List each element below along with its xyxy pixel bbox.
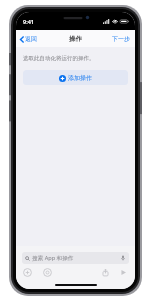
button[interactable]: Variables [43, 268, 52, 277]
button[interactable]: 返回 [16, 32, 42, 46]
staticText: 返回 [25, 35, 37, 43]
staticText: 搜索 App 和操作 [32, 254, 74, 262]
button[interactable]: Run [119, 268, 128, 277]
staticText: 下一步 [112, 35, 130, 43]
button[interactable]: 添加操作 [23, 70, 128, 85]
button[interactable]: Voice search [120, 255, 126, 261]
staticText: 添加操作 [68, 74, 92, 82]
staticText: 操作 [69, 35, 82, 43]
staticText: 9:41 [23, 18, 34, 25]
button[interactable]: 下一步 [107, 32, 135, 46]
staticText: 选取此自动化将运行的操作。 [23, 55, 95, 62]
button[interactable]: Share [101, 268, 110, 277]
button[interactable]: 搜索 App 和操作 [22, 252, 129, 264]
button[interactable]: Add action [23, 268, 32, 277]
